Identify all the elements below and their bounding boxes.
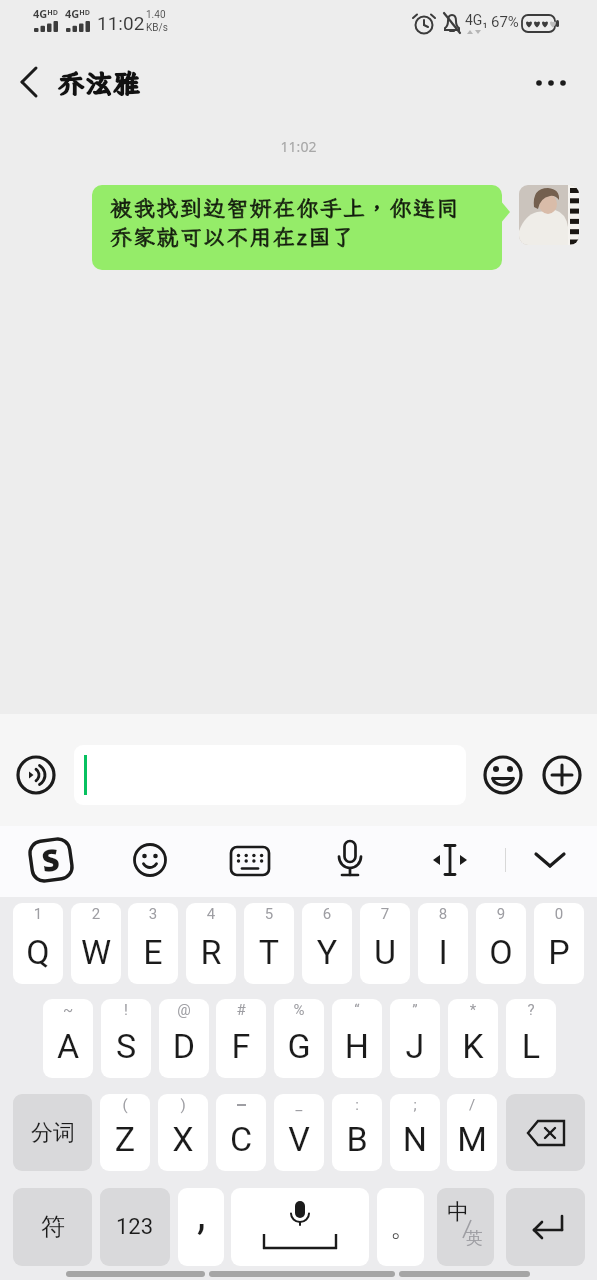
staticText: V	[274, 1119, 324, 1159]
button[interactable]: ;	[390, 1094, 440, 1171]
button[interactable]: %	[274, 999, 324, 1078]
button[interactable]: 9	[476, 903, 526, 984]
button[interactable]	[528, 60, 576, 104]
button[interactable]	[74, 745, 466, 805]
button[interactable]	[428, 840, 472, 880]
staticText: )	[158, 1096, 208, 1114]
staticText: 1	[13, 905, 63, 923]
button[interactable]: 2	[71, 903, 121, 984]
button[interactable]: :	[332, 1094, 382, 1171]
button[interactable]: !	[101, 999, 151, 1078]
button[interactable]: S	[26, 834, 76, 886]
button[interactable]	[506, 1188, 585, 1266]
button[interactable]: 7	[360, 903, 410, 984]
button[interactable]: C	[216, 1094, 266, 1171]
button[interactable]: ,	[178, 1188, 224, 1266]
button[interactable]	[130, 840, 170, 880]
staticText: S	[101, 1026, 151, 1066]
staticText: ”	[390, 1001, 440, 1019]
button[interactable]: _	[274, 1094, 324, 1171]
staticText: H	[332, 1026, 382, 1066]
staticText: 乔家就可以不用在z国了	[110, 222, 356, 251]
button[interactable]	[231, 1188, 369, 1266]
button[interactable]: 分词	[13, 1094, 92, 1171]
button[interactable]: 被我找到边智妍在你手上，你连同	[92, 185, 502, 270]
button[interactable]: )	[158, 1094, 208, 1171]
staticText: #	[216, 1001, 266, 1019]
button[interactable]	[519, 185, 579, 245]
staticText: 中	[447, 1198, 469, 1226]
staticText: ~	[43, 1001, 93, 1019]
button[interactable]: 6	[302, 903, 352, 984]
button[interactable]	[528, 840, 572, 880]
staticText: 4	[186, 905, 236, 923]
staticText: Q	[13, 932, 63, 972]
button[interactable]: /	[447, 1094, 497, 1171]
button[interactable]: 123	[100, 1188, 170, 1266]
button[interactable]: 符	[13, 1188, 92, 1266]
staticText: 符	[41, 1212, 65, 1242]
staticText: S	[39, 838, 63, 881]
staticText: 英	[466, 1228, 483, 1249]
staticText: I	[418, 932, 468, 972]
staticText: 。	[390, 1211, 416, 1244]
button[interactable]: ?	[506, 999, 556, 1078]
staticText: 67%	[491, 13, 519, 31]
button[interactable]: “	[332, 999, 382, 1078]
staticText: M	[447, 1119, 497, 1159]
staticText: 5	[244, 905, 294, 923]
staticText: L	[506, 1026, 556, 1066]
staticText: 分词	[31, 1119, 75, 1147]
staticText: 4G₁	[465, 12, 488, 28]
staticText: 1.40	[146, 9, 166, 21]
staticText: 被我找到边智妍在你手上，你连同	[110, 193, 460, 222]
staticText: ,	[197, 1188, 206, 1240]
staticText: 123	[116, 1214, 154, 1240]
button[interactable]: 0	[534, 903, 584, 984]
button[interactable]: 5	[244, 903, 294, 984]
button[interactable]	[8, 60, 52, 104]
button[interactable]	[330, 838, 370, 882]
button[interactable]	[506, 1094, 585, 1171]
button[interactable]: ~	[43, 999, 93, 1078]
button[interactable]: 8	[418, 903, 468, 984]
staticText: !	[101, 1001, 151, 1019]
staticText: G	[274, 1026, 324, 1066]
staticText: 2	[71, 905, 121, 923]
button[interactable]	[16, 755, 56, 795]
staticText: 11:02	[97, 12, 145, 34]
staticText: U	[360, 932, 410, 972]
staticText: 4Gᴴᴰ	[65, 6, 90, 21]
staticText: O	[476, 932, 526, 972]
button[interactable]: #	[216, 999, 266, 1078]
button[interactable]: 1	[13, 903, 63, 984]
staticText: “	[332, 1001, 382, 1019]
staticText: R	[186, 932, 236, 972]
staticText: _	[274, 1096, 324, 1114]
button[interactable]	[229, 840, 271, 880]
staticText: @	[159, 1001, 209, 1019]
button[interactable]: 中	[437, 1188, 494, 1266]
staticText: 8	[418, 905, 468, 923]
button[interactable]: *	[448, 999, 498, 1078]
button[interactable]: 3	[128, 903, 178, 984]
button[interactable]: (	[100, 1094, 150, 1171]
staticText: 4Gᴴᴰ	[33, 6, 58, 21]
staticText: ;	[390, 1096, 440, 1114]
staticText: KB/s	[146, 22, 168, 34]
staticText: P	[534, 932, 584, 972]
staticText: 9	[476, 905, 526, 923]
button[interactable]: 。	[377, 1188, 424, 1266]
staticText: 0	[534, 905, 584, 923]
button[interactable]: 4	[186, 903, 236, 984]
button[interactable]: ”	[390, 999, 440, 1078]
button[interactable]	[483, 755, 523, 795]
button[interactable]	[542, 755, 582, 795]
staticText: 乔泫雅	[58, 66, 142, 100]
staticText: F	[216, 1026, 266, 1066]
button[interactable]: @	[159, 999, 209, 1078]
staticText: 11:02	[0, 137, 597, 156]
staticText: 被我找到边智妍在你手上，你连同	[110, 193, 460, 222]
staticText: 7	[360, 905, 410, 923]
staticText: A	[43, 1026, 93, 1066]
